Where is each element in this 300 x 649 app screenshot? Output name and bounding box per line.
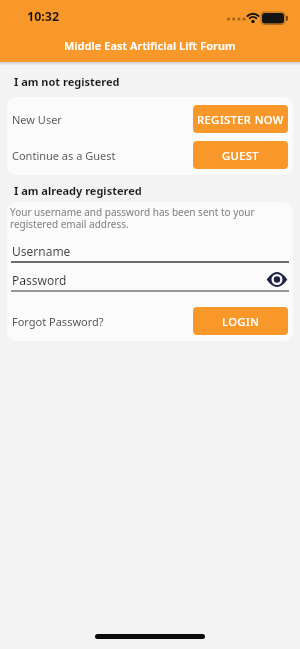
staticText: GUEST [222, 148, 260, 163]
staticText: Password [12, 272, 67, 288]
staticText: New User [12, 112, 62, 127]
button[interactable]: Username [7, 238, 293, 264]
staticText: 10:32 [27, 8, 60, 25]
staticText: Your username and password has been sent… [10, 205, 255, 231]
staticText: Continue as a Guest [12, 148, 116, 163]
button[interactable]: Forgot Password? [12, 314, 104, 329]
staticText: I am already registered [14, 183, 142, 198]
button[interactable]: LOGIN [193, 307, 288, 335]
staticText: I am not registered [14, 74, 120, 89]
button[interactable]: Continue as a Guest [7, 141, 293, 169]
button[interactable]: New User [7, 105, 293, 133]
staticText: REGISTER NOW [197, 112, 284, 127]
button[interactable]: REGISTER NOW [193, 105, 288, 133]
staticText: LOGIN [222, 314, 260, 329]
button[interactable]: Password [7, 267, 293, 293]
button[interactable]: GUEST [193, 141, 288, 169]
staticText: Username [12, 243, 71, 259]
staticText: Middle East Artificial Lift Forum [64, 38, 236, 53]
button[interactable] [263, 266, 291, 292]
